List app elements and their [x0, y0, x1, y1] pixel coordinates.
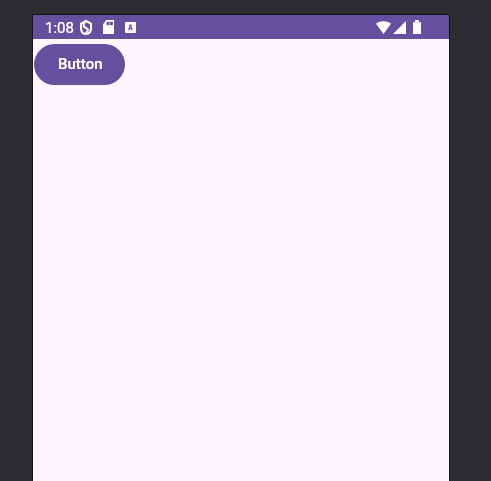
other: Mobile signal — [393, 21, 406, 34]
staticText: Button — [58, 55, 103, 73]
button[interactable]: Button — [34, 44, 125, 85]
other: App notification — [125, 22, 136, 33]
staticText: 1:08 — [45, 19, 74, 37]
other: Battery — [413, 20, 421, 34]
other: SD card — [103, 20, 114, 34]
other: Developer mode — [80, 20, 92, 35]
other: Wi-Fi — [376, 20, 391, 34]
